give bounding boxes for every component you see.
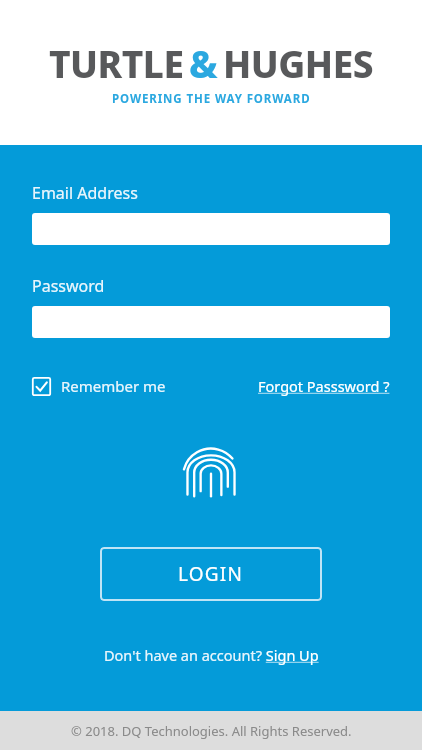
button[interactable]: Don't have an account? Sign Up: [104, 645, 319, 665]
staticText: Don't have an account? Sign Up: [104, 645, 319, 665]
staticText: Forgot Passsword ?: [258, 376, 390, 396]
staticText: POWERING THE WAY FORWARD: [112, 91, 311, 107]
button[interactable]: Remember me: [32, 376, 166, 396]
button[interactable]: Fingerprint login: [183, 443, 239, 499]
button[interactable]: LOGIN: [100, 547, 322, 601]
staticText: Password: [32, 275, 105, 297]
staticText: Email Address: [32, 182, 138, 204]
staticText: © 2018. DQ Technologies. All Rights Rese…: [71, 722, 352, 740]
button[interactable]: [32, 306, 390, 338]
staticText: HUGHES: [223, 38, 373, 88]
staticText: Remember me: [61, 376, 166, 396]
staticText: TURTLE: [49, 38, 184, 88]
button[interactable]: [32, 213, 390, 245]
staticText: LOGIN: [178, 561, 244, 587]
button[interactable]: Forgot Passsword ?: [258, 376, 390, 396]
staticText: &: [189, 38, 218, 88]
